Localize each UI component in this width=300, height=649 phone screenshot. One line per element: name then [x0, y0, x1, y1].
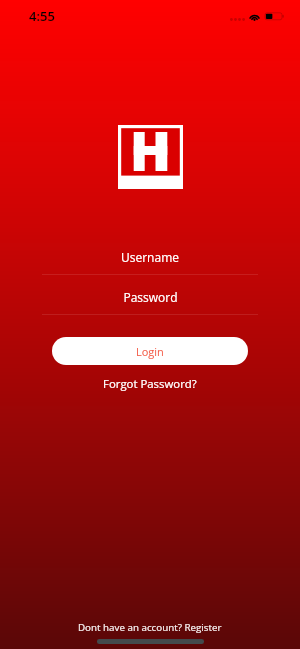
button[interactable]: Username [0, 249, 300, 275]
staticText: 4:55 [29, 7, 55, 25]
staticText: Dont have an account? Register [78, 621, 222, 634]
staticText: Forgot Password? [103, 376, 197, 392]
button[interactable]: Login [52, 337, 248, 365]
button[interactable]: Forgot Password? [95, 374, 205, 394]
staticText: Login [136, 344, 164, 359]
staticText: Username [121, 249, 179, 265]
staticText: Password [123, 289, 178, 305]
button[interactable]: Dont have an account? Register [70, 619, 230, 636]
button[interactable]: Password [0, 289, 300, 315]
